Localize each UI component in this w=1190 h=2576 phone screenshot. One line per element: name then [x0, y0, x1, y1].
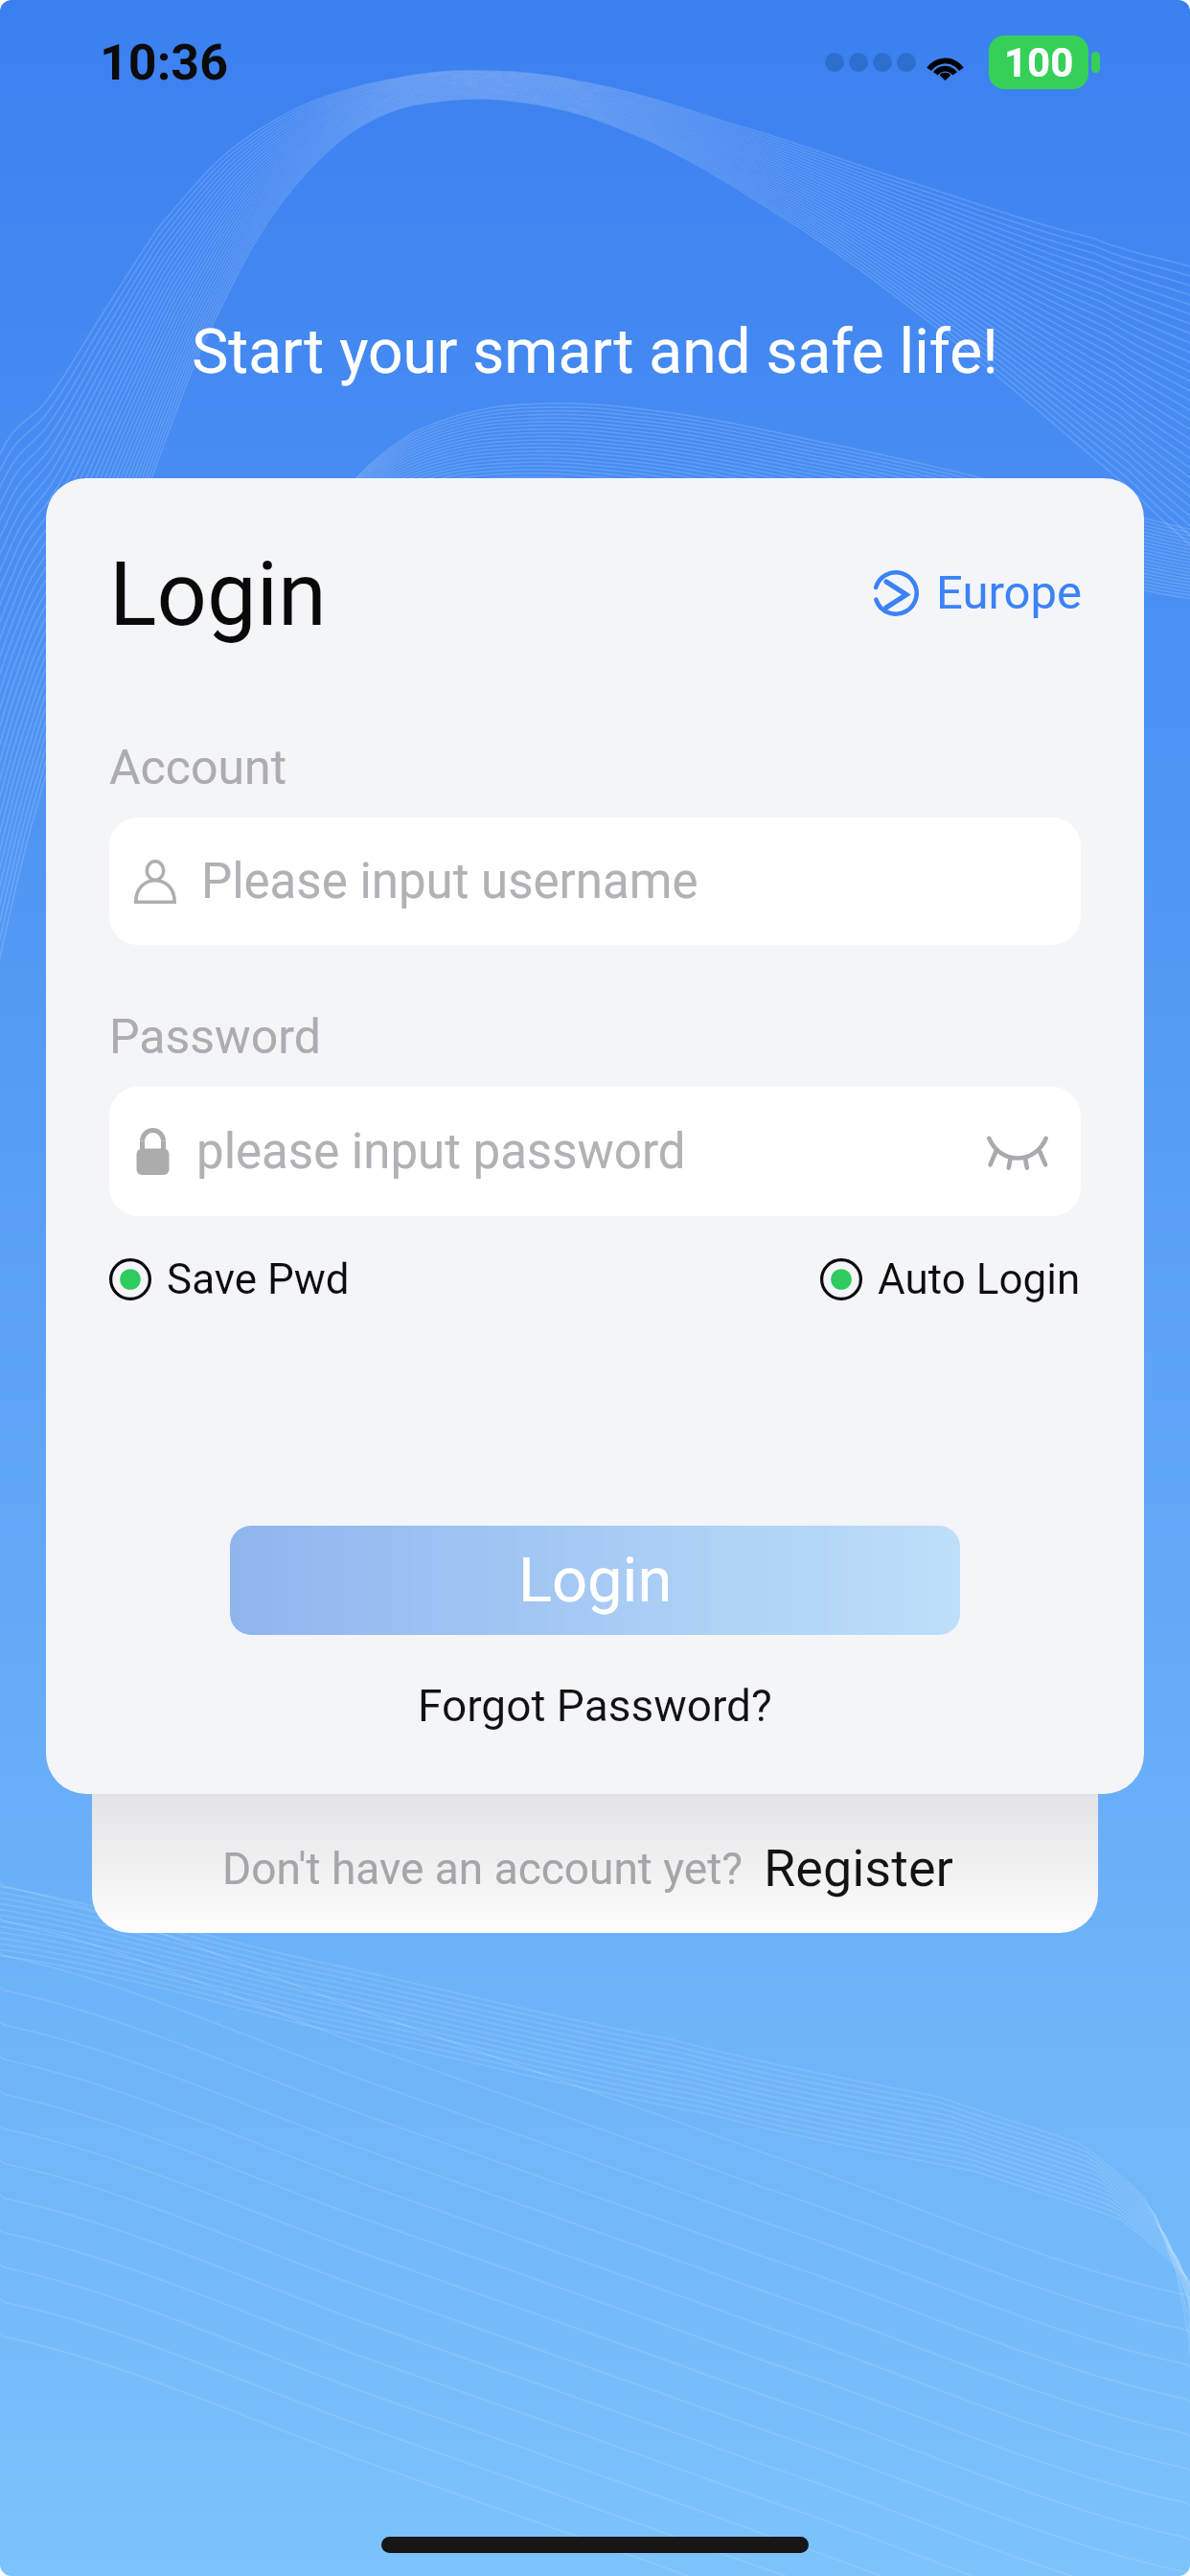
staticText: Password — [109, 1009, 321, 1066]
button[interactable]: Europe — [873, 565, 1083, 620]
staticText: 100 — [1004, 39, 1074, 86]
button[interactable]: Login — [230, 1526, 960, 1635]
staticText: Auto Login — [878, 1254, 1081, 1304]
staticText: please input password — [196, 1123, 686, 1181]
button[interactable]: Don't have an account yet? — [92, 1715, 1098, 1933]
button[interactable]: Forgot Password? — [389, 1668, 801, 1743]
staticText: 10:36 — [100, 34, 229, 92]
button[interactable]: Show password — [975, 1110, 1060, 1194]
staticText: Login — [109, 543, 327, 647]
staticText: Europe — [936, 565, 1083, 620]
staticText: Forgot Password? — [418, 1680, 772, 1732]
staticText: Save Pwd — [167, 1254, 350, 1304]
staticText: Register — [764, 1838, 953, 1898]
staticText: Please input username — [201, 853, 698, 910]
staticText: Account — [109, 740, 287, 796]
staticText: Start your smart and safe life! — [0, 316, 1190, 388]
button[interactable]: Save Pwd — [109, 1254, 350, 1304]
button[interactable]: please input password — [134, 1087, 1060, 1216]
button[interactable]: Please input username — [134, 817, 1060, 945]
button[interactable]: Auto Login — [820, 1254, 1081, 1304]
staticText: Login — [518, 1544, 673, 1617]
staticText: Don't have an account yet? — [222, 1843, 743, 1895]
